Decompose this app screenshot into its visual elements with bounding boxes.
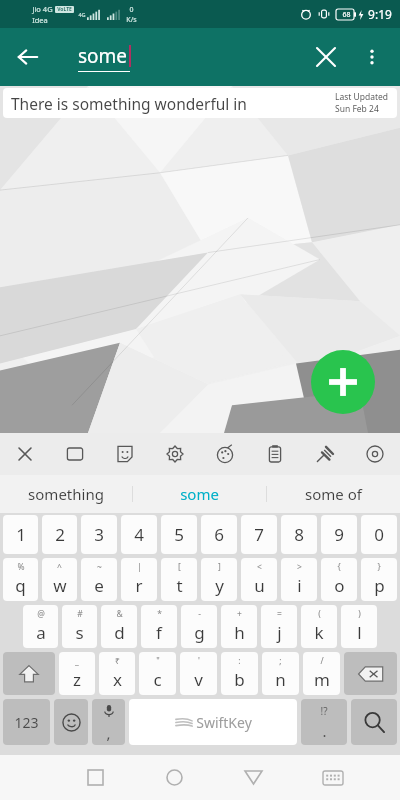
staticText: y bbox=[215, 574, 224, 597]
button[interactable]: ) bbox=[341, 605, 377, 648]
button[interactable]: Pin bbox=[300, 433, 350, 475]
button[interactable]: Add bbox=[311, 350, 375, 414]
staticText: = bbox=[277, 608, 282, 620]
button[interactable]: ₹ bbox=[99, 652, 135, 695]
button[interactable]: ' bbox=[180, 652, 217, 695]
button[interactable]: Space bbox=[129, 699, 297, 745]
staticText: VoLTE bbox=[57, 6, 72, 13]
staticText: i bbox=[297, 574, 302, 597]
staticText: something bbox=[28, 484, 104, 504]
staticText: !? bbox=[320, 704, 328, 718]
button[interactable]: } bbox=[361, 558, 397, 601]
button[interactable]: 7 bbox=[241, 515, 277, 554]
button[interactable]: * bbox=[141, 605, 177, 648]
button[interactable]: 6 bbox=[201, 515, 237, 554]
staticText: d bbox=[114, 621, 125, 644]
staticText: % bbox=[17, 561, 25, 573]
button[interactable]: ( bbox=[301, 605, 337, 648]
button[interactable]: < bbox=[241, 558, 277, 601]
button[interactable]: More options bbox=[350, 35, 394, 79]
button[interactable]: " bbox=[139, 652, 176, 695]
button[interactable]: Close bbox=[0, 433, 50, 475]
button[interactable]: ~ bbox=[81, 558, 117, 601]
button[interactable]: _ bbox=[59, 652, 95, 695]
staticText: " bbox=[156, 655, 160, 667]
button[interactable]: Emoji bbox=[54, 699, 88, 745]
button[interactable]: There is something wonderful in bbox=[3, 88, 397, 118]
button[interactable]: some bbox=[133, 475, 266, 513]
button[interactable]: some bbox=[78, 40, 218, 74]
button[interactable]: | bbox=[121, 558, 157, 601]
button[interactable]: Recents bbox=[56, 755, 135, 800]
staticText: 9 bbox=[334, 523, 344, 546]
button[interactable]: Hide keyboard bbox=[293, 755, 372, 800]
staticText: q bbox=[15, 574, 26, 597]
button[interactable]: 5 bbox=[161, 515, 197, 554]
staticText: t bbox=[176, 574, 183, 597]
staticText: @ bbox=[37, 608, 45, 620]
staticText: ; bbox=[279, 655, 282, 667]
staticText: some bbox=[78, 43, 128, 69]
button[interactable]: [ bbox=[161, 558, 197, 601]
button[interactable]: Location bbox=[350, 433, 400, 475]
button[interactable]: Back bbox=[6, 35, 50, 79]
button[interactable]: some of bbox=[267, 475, 400, 513]
button[interactable]: Themes bbox=[200, 433, 250, 475]
button[interactable]: something bbox=[0, 475, 132, 513]
button[interactable]: 1 bbox=[3, 515, 38, 554]
button[interactable]: 9 bbox=[321, 515, 357, 554]
staticText: ( bbox=[318, 608, 321, 620]
button[interactable]: : bbox=[221, 652, 258, 695]
button[interactable]: - bbox=[181, 605, 217, 648]
button[interactable]: 3 bbox=[81, 515, 117, 554]
staticText: 4 bbox=[134, 523, 144, 546]
button[interactable]: = bbox=[261, 605, 297, 648]
staticText: There is something wonderful in bbox=[11, 93, 331, 114]
button[interactable]: Shift bbox=[3, 652, 55, 695]
button[interactable]: ] bbox=[201, 558, 237, 601]
staticText: 6 bbox=[214, 523, 224, 546]
button[interactable]: / bbox=[303, 652, 340, 695]
button[interactable]: Search bbox=[351, 699, 397, 745]
button[interactable]: @ bbox=[23, 605, 58, 648]
button[interactable]: GIF bbox=[50, 433, 100, 475]
button[interactable]: Clear bbox=[304, 35, 348, 79]
staticText: m bbox=[314, 668, 330, 691]
staticText: 9:19 bbox=[368, 6, 392, 22]
staticText: c bbox=[153, 668, 162, 691]
button[interactable]: % bbox=[3, 558, 38, 601]
button[interactable]: Settings bbox=[150, 433, 200, 475]
staticText: / bbox=[320, 655, 324, 667]
staticText: 3 bbox=[94, 523, 104, 546]
staticText: a bbox=[36, 621, 46, 644]
button[interactable]: > bbox=[281, 558, 317, 601]
button[interactable]: 8 bbox=[281, 515, 317, 554]
button[interactable]: { bbox=[321, 558, 357, 601]
button[interactable]: # bbox=[62, 605, 97, 648]
staticText: } bbox=[377, 561, 381, 573]
button[interactable]: & bbox=[101, 605, 137, 648]
staticText: [ bbox=[178, 561, 181, 573]
button[interactable]: Stickers bbox=[100, 433, 150, 475]
staticText: Jio 4G bbox=[32, 4, 53, 14]
button[interactable]: Back bbox=[214, 755, 293, 800]
button[interactable]: 123 bbox=[3, 699, 50, 745]
staticText: 2 bbox=[55, 523, 65, 546]
staticText: ' bbox=[198, 655, 200, 667]
button[interactable]: Voice input bbox=[92, 699, 125, 745]
button[interactable]: 4 bbox=[121, 515, 157, 554]
staticText: z bbox=[73, 668, 81, 691]
button[interactable]: 0 bbox=[361, 515, 397, 554]
staticText: 68 bbox=[342, 10, 351, 20]
button[interactable]: ; bbox=[262, 652, 299, 695]
button[interactable]: ^ bbox=[42, 558, 77, 601]
staticText: some of bbox=[305, 484, 362, 504]
button[interactable]: Home bbox=[135, 755, 214, 800]
button[interactable]: + bbox=[221, 605, 257, 648]
button[interactable]: Backspace bbox=[344, 652, 397, 695]
staticText: SwiftKey bbox=[196, 713, 252, 732]
button[interactable]: Clipboard bbox=[250, 433, 300, 475]
staticText: * bbox=[157, 608, 162, 620]
button[interactable]: !? bbox=[301, 699, 347, 745]
button[interactable]: 2 bbox=[42, 515, 77, 554]
